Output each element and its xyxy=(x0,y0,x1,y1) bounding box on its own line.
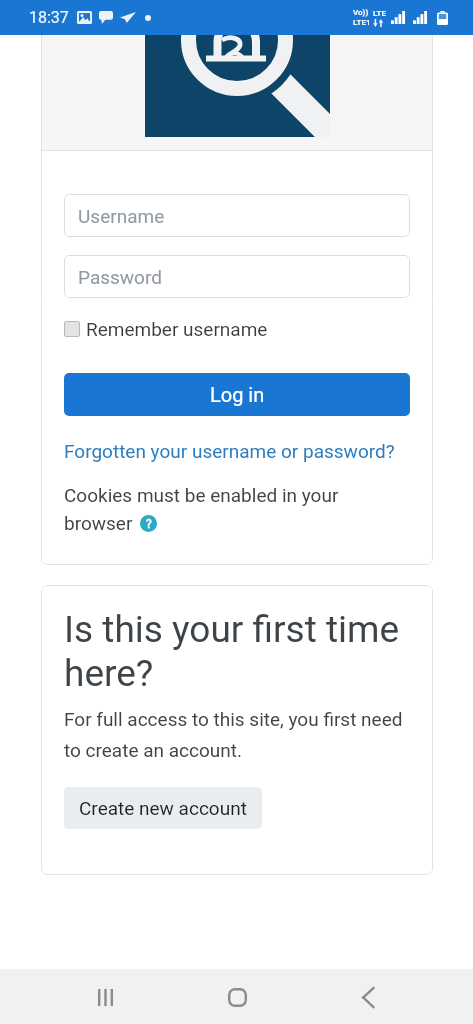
button[interactable]: Create new account xyxy=(64,787,262,829)
button[interactable]: Forgotten your username or password? xyxy=(64,440,395,462)
staticText: Remember username xyxy=(86,318,268,340)
button[interactable]: Back xyxy=(342,971,394,1023)
staticText: Log in xyxy=(210,383,265,406)
staticText: Username xyxy=(78,205,165,227)
staticText: For full access to this site, you first … xyxy=(64,708,410,761)
staticText: Create new account xyxy=(79,797,247,819)
staticText: ? xyxy=(146,517,152,531)
button[interactable]: Home xyxy=(211,971,263,1023)
button[interactable]: Help about cookies xyxy=(140,515,157,532)
staticText: Password xyxy=(78,266,162,288)
staticText: Cookies must be enabled in your xyxy=(64,484,339,506)
staticText: Is this your first time here? xyxy=(64,608,410,695)
button[interactable]: Recent apps xyxy=(79,971,131,1023)
staticText: 18:37 xyxy=(29,8,69,27)
staticText: LTE xyxy=(373,9,386,18)
button[interactable]: Username xyxy=(64,194,410,237)
staticText: browser xyxy=(64,512,133,534)
button[interactable]: Remember username xyxy=(64,318,268,340)
staticText: LTE1 xyxy=(353,18,371,27)
staticText: Vo)) xyxy=(353,8,369,17)
button[interactable]: Log in xyxy=(64,373,410,416)
button[interactable]: Password xyxy=(64,255,410,298)
